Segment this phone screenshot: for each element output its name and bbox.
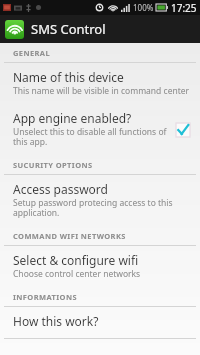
staticText: This name will be visible in command cen… [13,85,190,97]
staticText: SUCURITY OPTIONS [13,160,93,170]
staticText: GENERAL [13,48,51,58]
staticText: Name of this device [13,69,124,85]
button[interactable]: App engine enabled? [0,104,200,155]
staticText: Setup password protecing access to this … [13,197,191,219]
staticText: INFORMATIONS [13,292,77,302]
button[interactable]: Name of this device [0,63,200,104]
staticText: App engine enabled? [13,110,132,126]
button[interactable]: Select & configure wifi [0,246,200,287]
staticText: SMS Control [31,20,106,38]
button[interactable]: How this work? [0,307,200,338]
button[interactable]: App engine enabled checkbox [174,121,191,138]
staticText: Choose control center networks [13,268,141,280]
staticText: Access password [13,181,108,197]
staticText: Unselect this to disable all functions o… [13,126,174,148]
staticText: Select & configure wifi [13,252,139,268]
staticText: 100% [133,2,154,13]
other: App icon [5,20,24,39]
button[interactable]: Access password [0,175,200,226]
staticText: 17:25 [171,1,197,15]
staticText: COMMAND WIFI NETWORKS [13,231,126,241]
staticText: How this work? [13,313,99,329]
